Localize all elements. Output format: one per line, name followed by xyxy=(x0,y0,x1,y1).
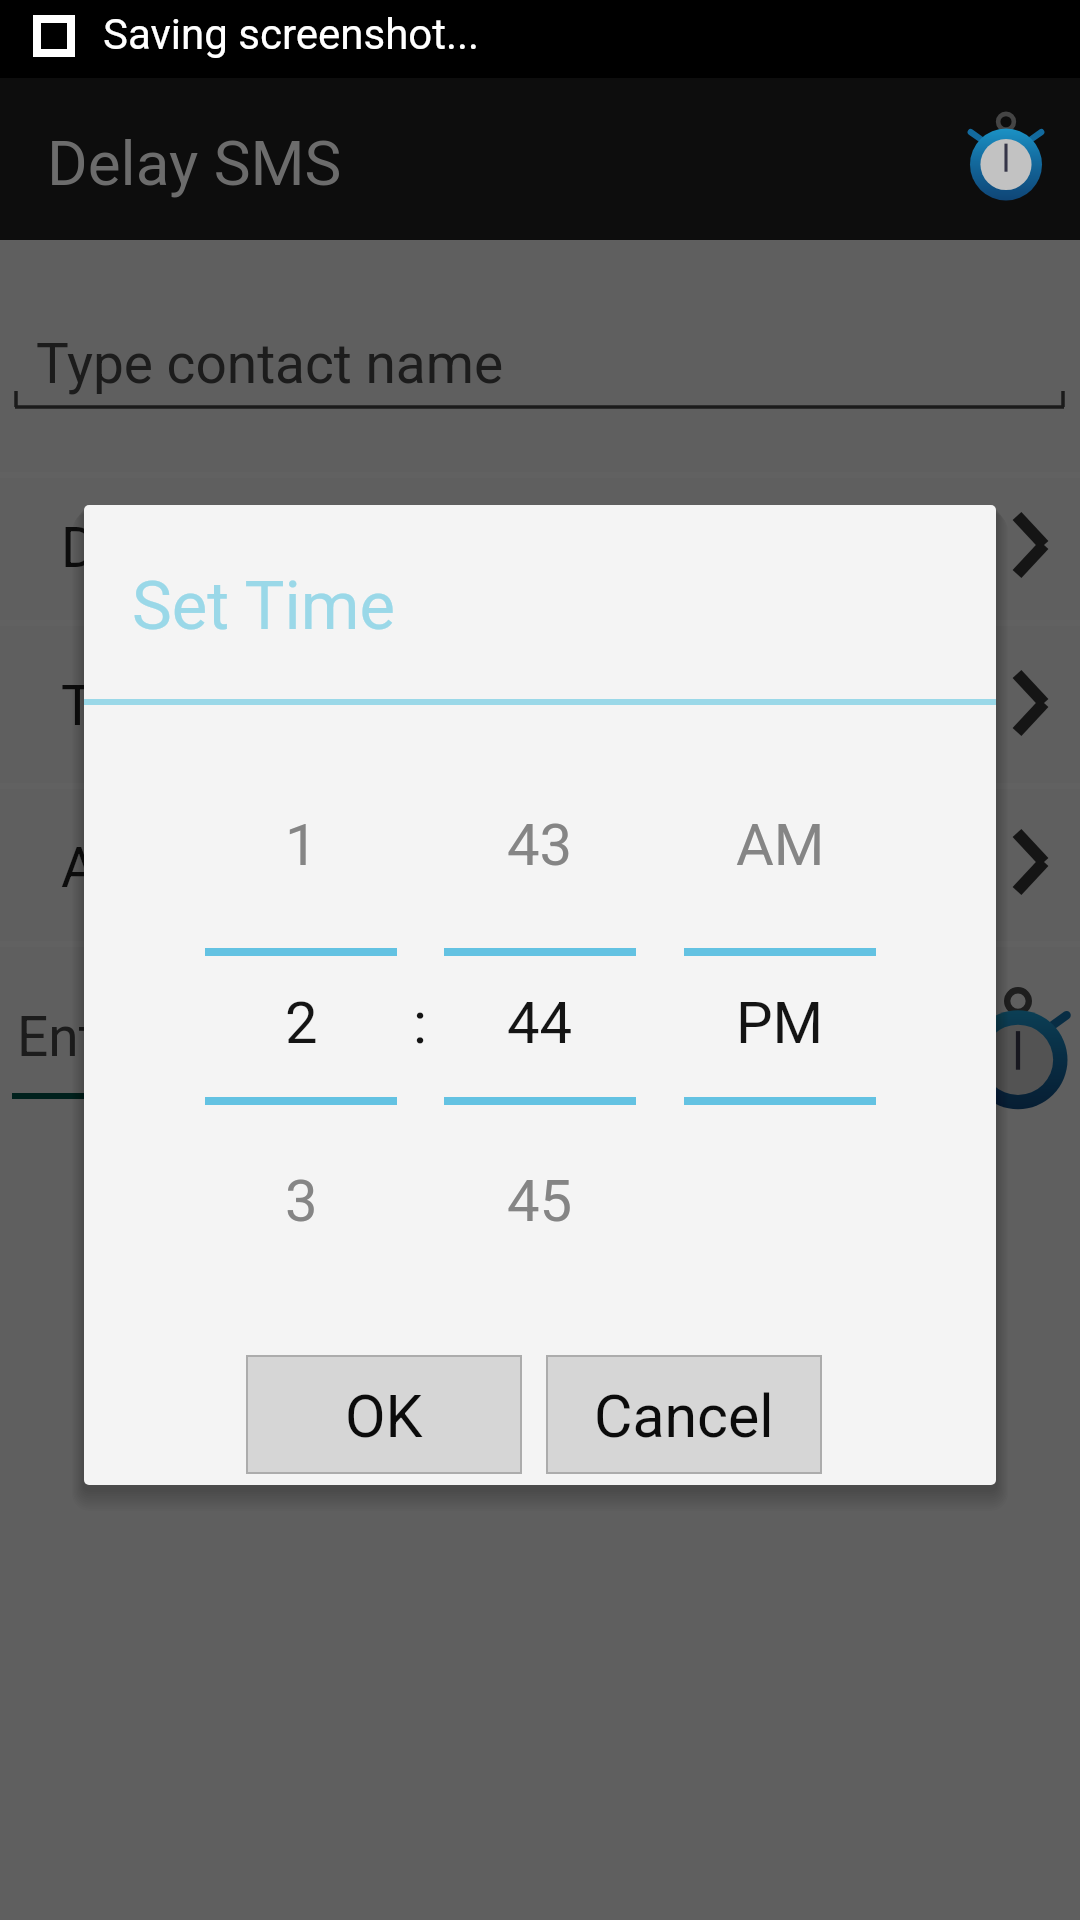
staticText: Add attachment xyxy=(61,836,454,900)
button[interactable]: 45 xyxy=(444,1146,636,1256)
button[interactable]: 2 xyxy=(205,968,397,1078)
button[interactable]: 3 xyxy=(205,1146,397,1256)
staticText: Time xyxy=(61,674,185,738)
staticText: Type contact name xyxy=(36,332,504,396)
staticText: Delay SMS xyxy=(47,127,342,200)
staticText: 44 xyxy=(507,989,573,1057)
staticText: 43 xyxy=(507,811,573,879)
staticText: : xyxy=(413,989,428,1057)
staticText: 1 xyxy=(285,811,318,879)
button[interactable]: Stopwatch xyxy=(958,105,1054,201)
staticText: 2 xyxy=(285,989,318,1057)
staticText: Cancel xyxy=(594,1382,774,1451)
staticText: PM xyxy=(736,989,824,1057)
button[interactable]: Schedule message xyxy=(952,978,1080,1110)
button[interactable]: PM xyxy=(684,968,876,1078)
button[interactable]: Cancel xyxy=(546,1355,822,1474)
staticText: Enter message xyxy=(17,1005,383,1069)
staticText: 2:44 PM xyxy=(776,675,968,736)
button[interactable]: Time xyxy=(0,626,1080,783)
button[interactable]: OK xyxy=(246,1355,522,1474)
staticText: 45 xyxy=(507,1167,573,1235)
button[interactable]: 44 xyxy=(444,968,636,1078)
staticText: Set Time xyxy=(132,567,396,646)
button[interactable]: AM xyxy=(684,790,876,900)
staticText: OK xyxy=(345,1382,423,1451)
staticText: Date xyxy=(61,516,175,580)
staticText: AM xyxy=(736,811,825,879)
staticText: 3 xyxy=(285,1167,318,1235)
button[interactable]: 43 xyxy=(444,790,636,900)
button[interactable]: Date xyxy=(0,478,1080,620)
button[interactable]: 1 xyxy=(205,790,397,900)
staticText: Saving screenshot... xyxy=(103,10,480,59)
button[interactable]: Add attachment xyxy=(0,789,1080,941)
